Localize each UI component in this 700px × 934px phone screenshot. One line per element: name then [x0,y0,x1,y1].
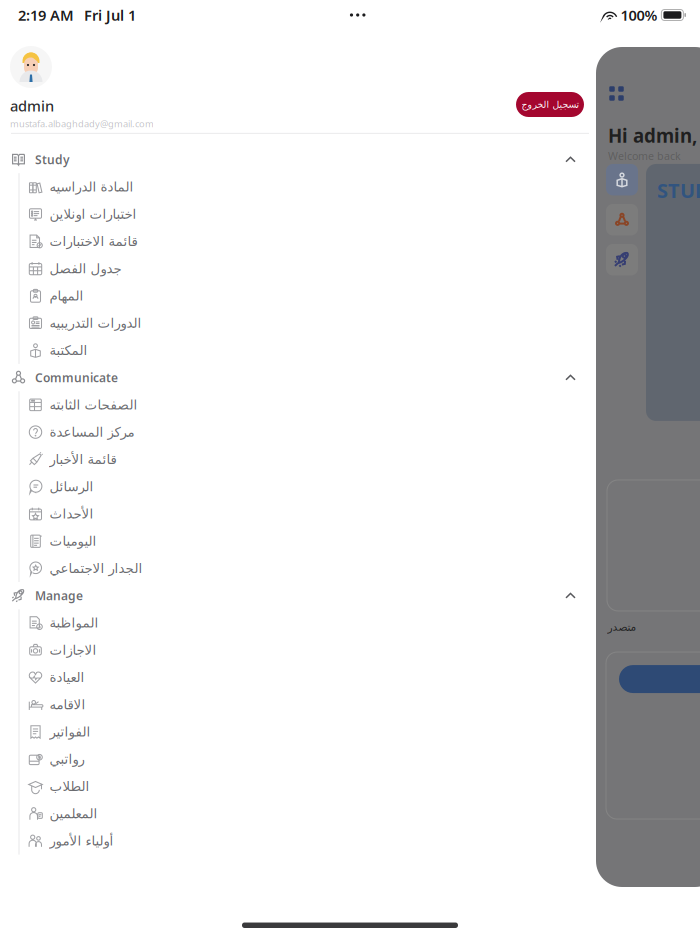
button[interactable]: Manage [0,582,595,609]
staticText: الرسائل [49,479,93,494]
button[interactable]: الأحداث [0,500,595,528]
button[interactable]: Communicate [606,204,638,235]
button[interactable]: الاقامه [0,691,595,718]
button[interactable]: تسجيل الخروج [516,92,584,117]
button[interactable]: الفواتير [0,718,595,746]
button[interactable]: رواتبي [0,746,595,773]
staticText: تسجيل الخروج [521,99,579,110]
staticText: الاقامه [49,697,85,712]
button[interactable]: اليوميات [0,527,595,555]
button[interactable]: أولياء الأمور [0,827,595,855]
staticText: اليوميات [49,534,96,549]
button[interactable]: المعلمين [0,800,595,827]
button[interactable]: قائمة الأخبار [0,446,595,473]
button[interactable]: Communicate [0,364,595,391]
button[interactable]: Study [0,146,595,173]
staticText: الفواتير [49,724,90,739]
button[interactable]: المادة الدراسيه [0,173,595,200]
staticText: متصدر [607,621,636,633]
button[interactable]: العيادة [0,664,595,691]
staticText: STUDY [657,177,700,204]
staticText: المواظبة [49,615,98,630]
staticText: 2:19 AM [18,5,74,25]
staticText: الدورات التدريبيه [49,315,141,331]
staticText: Communicate [35,370,118,385]
staticText: الطلاب [49,779,89,794]
staticText: الاجازات [49,643,96,658]
staticText: جدول الفصل [49,261,121,276]
staticText: الجدار الاجتماعي [49,561,142,576]
button[interactable]: Manage [606,244,638,275]
button[interactable]: جدول الفصل [0,255,595,282]
staticText: اختبارات اونلاين [49,206,136,222]
staticText: 100% [620,5,657,25]
button[interactable]: الطلاب [0,773,595,800]
staticText: mustafa.albaghdady@gmail.com [10,117,154,130]
button[interactable]: الجدار الاجتماعي [0,555,595,582]
staticText: قائمة الاختبارات [49,234,137,249]
staticText: المكتبة [49,343,87,358]
button[interactable]: اختبارات اونلاين [0,200,595,228]
staticText: الأحداث [49,506,93,521]
staticText: Welcome back [608,149,681,163]
staticText: المهام [49,288,83,303]
button[interactable]: قائمة الاختبارات [0,228,595,255]
staticText: رواتبي [49,752,84,767]
button[interactable]: Menu [609,86,624,101]
staticText: Study [35,151,70,167]
staticText: أولياء الأمور [49,833,113,848]
button[interactable]: الرسائل [0,473,595,500]
button[interactable]: مركز المساعدة [0,418,595,446]
staticText: المادة الدراسيه [49,179,133,194]
button[interactable]: المكتبة [0,337,595,364]
button[interactable]: الاجازات [0,637,595,664]
staticText: العيادة [49,670,84,685]
staticText: قائمة الأخبار [49,452,116,467]
button[interactable]: المواظبة [0,609,595,637]
staticText: الصفحات الثابته [49,397,137,412]
button[interactable]: الدورات التدريبيه [0,309,595,337]
staticText: Fri Jul 1 [84,5,136,25]
button[interactable]: الصفحات الثابته [0,391,595,418]
staticText: Manage [35,588,83,604]
button[interactable]: Study [606,164,638,195]
staticText: admin [10,96,54,115]
staticText: المعلمين [49,806,97,821]
button[interactable]: المهام [0,282,595,309]
staticText: Hi admin, [608,123,697,148]
staticText: مركز المساعدة [49,424,134,440]
